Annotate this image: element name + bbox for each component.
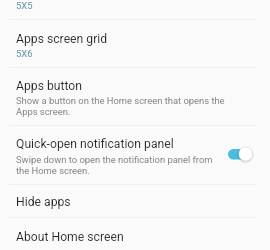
staticText: Apps button bbox=[16, 79, 83, 93]
button[interactable]: Quick-open notification panel, on bbox=[224, 144, 256, 164]
staticText: Show a button on the Home screen that op… bbox=[16, 95, 228, 117]
staticText: Swipe down to open the notification pane… bbox=[16, 154, 216, 176]
button[interactable]: Quick-open notification panel bbox=[0, 125, 270, 184]
staticText: 5X5 bbox=[16, 0, 33, 11]
staticText: 5X6 bbox=[16, 48, 33, 59]
staticText: About Home screen bbox=[16, 230, 124, 244]
button[interactable]: Apps screen grid, 5X6 bbox=[0, 20, 270, 67]
button[interactable]: Home screen grid, 5X5 bbox=[0, 0, 270, 19]
button[interactable]: Apps button bbox=[0, 68, 270, 124]
staticText: Quick-open notification panel bbox=[16, 137, 174, 151]
staticText: Hide apps bbox=[16, 195, 71, 209]
staticText: Apps screen grid bbox=[16, 32, 108, 46]
button[interactable]: Hide apps bbox=[0, 185, 270, 217]
button[interactable]: About Home screen bbox=[0, 218, 270, 250]
